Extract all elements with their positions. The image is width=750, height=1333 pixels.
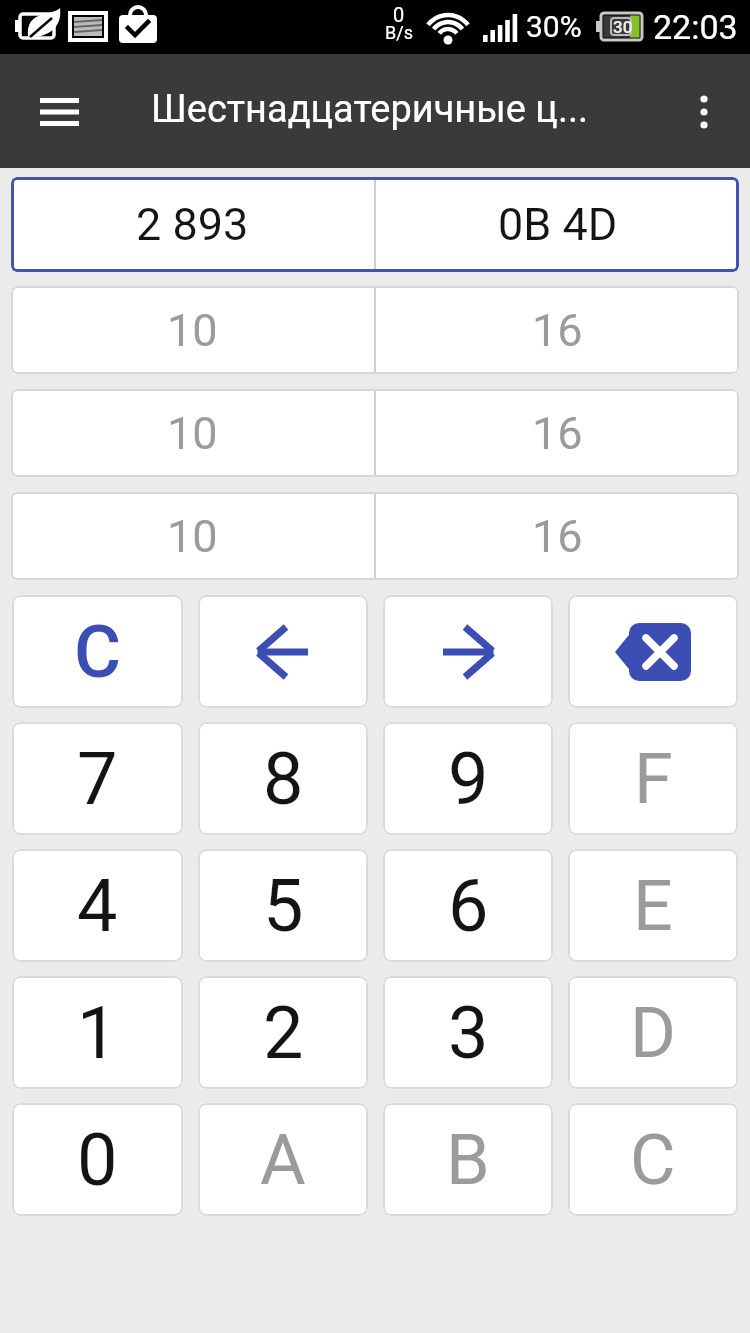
staticText: C: [74, 610, 122, 694]
button[interactable]: [24, 96, 94, 128]
staticText: F: [634, 738, 673, 820]
button[interactable]: [383, 595, 553, 708]
button[interactable]: 10: [11, 286, 739, 374]
staticText: B/s: [385, 22, 413, 43]
button[interactable]: 5: [198, 849, 368, 962]
staticText: 1: [77, 991, 118, 1075]
button[interactable]: E: [568, 849, 738, 962]
staticText: 9: [448, 737, 489, 821]
button[interactable]: [568, 595, 738, 708]
staticText: C: [630, 1119, 676, 1201]
staticText: D: [630, 992, 676, 1074]
button[interactable]: [198, 595, 368, 708]
staticText: Шестнадцатеричные ц...: [151, 87, 588, 132]
button[interactable]: C: [12, 595, 183, 708]
staticText: 3: [448, 991, 489, 1075]
button[interactable]: F: [568, 722, 738, 835]
button[interactable]: 0: [12, 1103, 183, 1216]
staticText: A: [260, 1119, 306, 1201]
staticText: 30: [613, 17, 633, 37]
button[interactable]: A: [198, 1103, 368, 1216]
button[interactable]: 10: [11, 389, 739, 477]
staticText: 0: [393, 3, 405, 26]
staticText: 2 893: [136, 198, 249, 251]
button[interactable]: 10: [11, 492, 739, 580]
staticText: 0: [77, 1118, 118, 1202]
button[interactable]: D: [568, 976, 738, 1089]
staticText: B: [446, 1119, 490, 1201]
staticText: 10: [167, 304, 218, 357]
button[interactable]: 2: [198, 976, 368, 1089]
button[interactable]: 7: [12, 722, 183, 835]
button[interactable]: 4: [12, 849, 183, 962]
staticText: 4: [77, 864, 118, 948]
button[interactable]: 9: [383, 722, 553, 835]
staticText: 0B 4D: [498, 198, 618, 251]
button[interactable]: 1: [12, 976, 183, 1089]
button[interactable]: 2 893: [11, 177, 739, 272]
staticText: 10: [167, 407, 218, 460]
staticText: 6: [448, 864, 489, 948]
staticText: 30%: [526, 9, 582, 44]
button[interactable]: C: [568, 1103, 738, 1216]
button[interactable]: B: [383, 1103, 553, 1216]
staticText: 8: [263, 737, 304, 821]
staticText: 16: [532, 407, 583, 460]
staticText: 22:03: [653, 7, 738, 47]
staticText: 7: [77, 737, 118, 821]
button[interactable]: 3: [383, 976, 553, 1089]
staticText: 5: [263, 864, 304, 948]
staticText: 16: [532, 510, 583, 563]
button[interactable]: [676, 94, 732, 130]
button[interactable]: 8: [198, 722, 368, 835]
staticText: 2: [263, 991, 304, 1075]
staticText: E: [633, 865, 673, 947]
staticText: 10: [167, 510, 218, 563]
button[interactable]: 6: [383, 849, 553, 962]
staticText: 16: [532, 304, 583, 357]
